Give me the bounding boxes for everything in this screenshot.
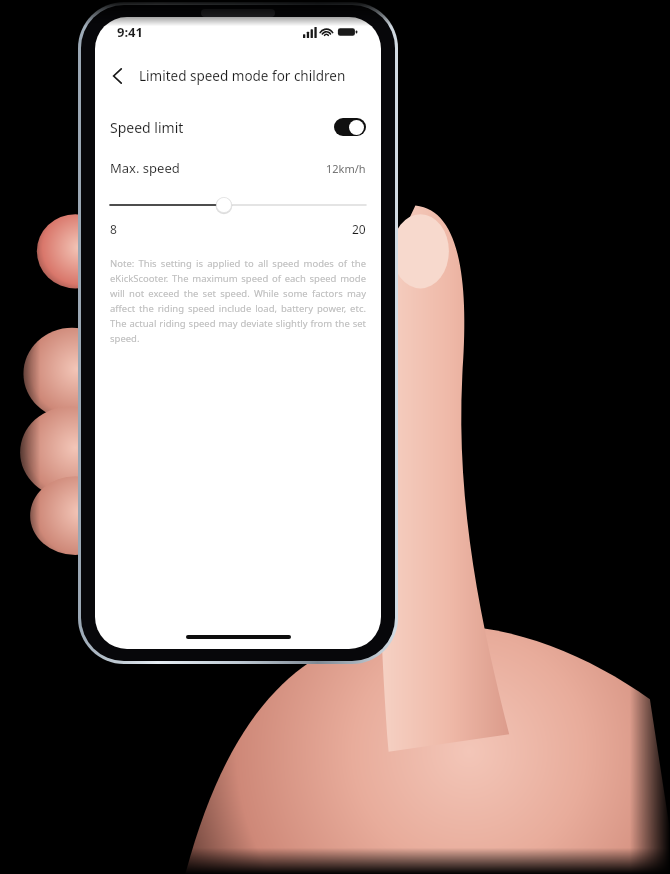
button[interactable]: Back	[101, 59, 135, 93]
staticText: Limited speed mode for children	[139, 67, 346, 85]
staticText: 20	[352, 221, 366, 237]
staticText: Speed limit	[110, 118, 184, 137]
button[interactable]: Speed limit toggle, on	[334, 118, 366, 136]
button[interactable]: Speed limit	[95, 107, 381, 147]
staticText: 9:41	[117, 23, 143, 41]
staticText: Max. speed	[110, 159, 180, 177]
button[interactable]: Max speed slider	[95, 195, 381, 215]
staticText: Note: This setting is applied to all spe…	[110, 257, 366, 345]
staticText: 12km/h	[326, 161, 366, 176]
staticText: 8	[110, 221, 117, 237]
